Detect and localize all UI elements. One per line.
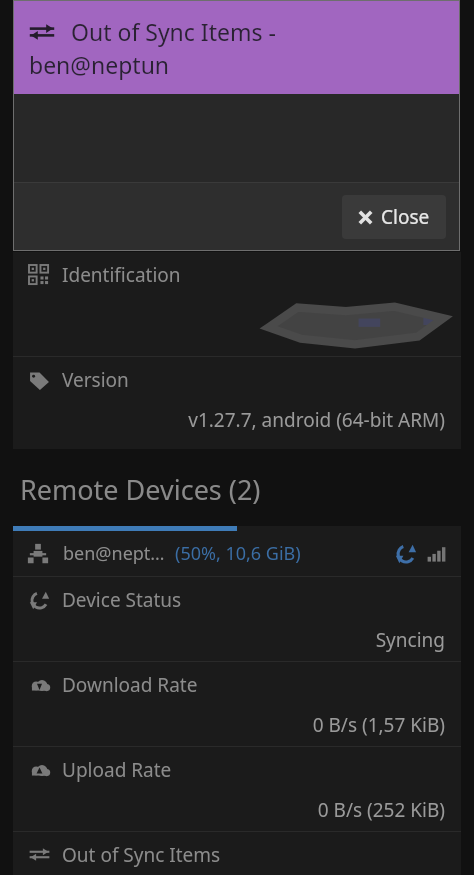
staticText: 0 B/s (252 KiB) xyxy=(317,797,445,823)
staticText: Identification xyxy=(62,262,181,288)
other: Syncing xyxy=(395,543,417,565)
staticText: Remote Devices (2) xyxy=(20,471,261,508)
staticText: Out of Sync Items xyxy=(62,842,221,867)
button[interactable]: Download Rate xyxy=(13,662,461,746)
button[interactable]: ben@nept… xyxy=(13,531,461,576)
staticText: Version xyxy=(62,367,129,393)
staticText: Upload Rate xyxy=(62,757,172,783)
button[interactable]: Version xyxy=(13,357,461,441)
staticText: Download Rate xyxy=(62,672,198,698)
staticText: Device Status xyxy=(62,587,182,613)
staticText: Out of Sync Items - xyxy=(71,16,276,47)
staticText: v1.27.7, android (64-bit ARM) xyxy=(188,407,445,433)
button[interactable]: Out of Sync Items xyxy=(13,832,461,875)
button[interactable]: Identification xyxy=(13,252,461,356)
button[interactable]: Close xyxy=(342,195,446,239)
staticText: ben@nept… xyxy=(63,541,165,566)
staticText: 0 B/s (1,57 KiB) xyxy=(312,712,445,738)
staticText: ben@neptun xyxy=(29,49,170,80)
staticText: (50%, 10,6 GiB) xyxy=(175,541,301,566)
button[interactable]: Device Status xyxy=(13,577,461,661)
staticText: Close xyxy=(381,204,430,230)
button[interactable]: Upload Rate xyxy=(13,747,461,831)
staticText: Syncing xyxy=(375,627,445,653)
other: Signal xyxy=(427,544,447,564)
